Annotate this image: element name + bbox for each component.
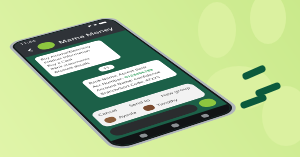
- staticText: Bank statements: [49, 57, 91, 70]
- staticText: Timothy: [155, 97, 179, 107]
- staticText: 0123456789: [123, 68, 154, 79]
- staticText: New group: [159, 86, 193, 98]
- staticText: 11: [102, 66, 111, 70]
- staticText: Buy a Card: [46, 58, 73, 67]
- staticText: Buy Airtime/Electricity: [39, 45, 91, 61]
- staticText: Account Name: Confidence: [95, 70, 161, 92]
- staticText: ◤ ▪: [87, 23, 99, 28]
- staticText: Send to: [127, 98, 152, 108]
- button[interactable]: Back: [23, 47, 38, 54]
- staticText: Cancel: [97, 108, 119, 117]
- staticText: Account details: [53, 61, 91, 74]
- staticText: Bank Name: Access Bank: [87, 65, 148, 85]
- staticText: Mama Money: [56, 26, 116, 45]
- staticText: Acc Number:: [91, 76, 126, 88]
- staticText: Ayoola: [117, 110, 138, 119]
- staticText: 11:44: [19, 39, 37, 46]
- staticText: Branch/Sort Code: 47223: [99, 75, 161, 95]
- staticText: Product information: [43, 49, 91, 64]
